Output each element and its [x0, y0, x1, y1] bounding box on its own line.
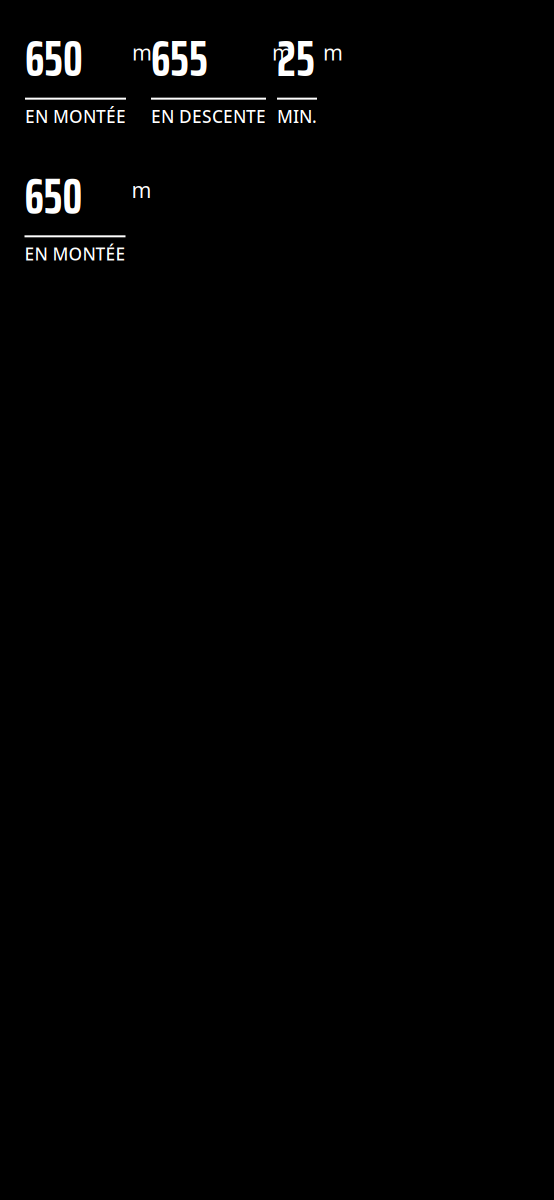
staticText: MIN. — [277, 105, 317, 128]
staticText: EN MONTÉE — [24, 242, 125, 265]
staticText: m — [272, 38, 292, 66]
staticText: m — [132, 38, 152, 66]
staticText: 650 — [25, 20, 83, 98]
staticText: 650 — [24, 158, 82, 235]
staticText: EN DESCENTE — [151, 105, 266, 128]
staticText: EN MONTÉE — [25, 105, 126, 128]
staticText: 25 — [277, 20, 315, 98]
staticText: m — [323, 38, 343, 66]
staticText: 655 — [151, 20, 208, 98]
staticText: m — [131, 176, 151, 204]
